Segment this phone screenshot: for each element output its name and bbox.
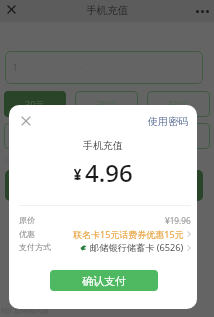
staticText: 优惠 — [19, 229, 35, 239]
button[interactable]: 200元 — [75, 123, 138, 149]
button[interactable]: 30元 — [4, 91, 66, 117]
button[interactable]: 确认支付 — [50, 270, 158, 291]
button[interactable]: 1 — [5, 51, 203, 84]
staticText: 8折 后继续问题 — [1, 306, 49, 316]
button[interactable]: Close — [4, 2, 19, 17]
staticText: 手机充值 — [86, 4, 128, 17]
staticText: ¥19.96 — [165, 215, 191, 226]
button[interactable]: 立即充值 — [5, 170, 203, 201]
button[interactable]: 优惠 — [9, 227, 197, 241]
staticText: 话费充值说明 — [5, 155, 53, 165]
staticText: 确认支付 — [82, 274, 126, 288]
button[interactable]: 100元 — [4, 123, 66, 149]
staticText: 邮储银行储蓄卡 (6526) — [90, 241, 184, 254]
button[interactable]: 使用密码 — [148, 115, 188, 128]
staticText: 30元 — [97, 98, 117, 110]
staticText: 1 — [13, 62, 18, 73]
button[interactable]: 30元 — [75, 91, 138, 117]
button[interactable]: 50元 — [147, 91, 210, 117]
staticText: 联名卡15元话费券优惠15元 — [73, 228, 184, 240]
staticText: 支付方式 — [19, 242, 51, 252]
staticText: 手机充值 — [83, 139, 123, 152]
staticText: 50元 — [169, 98, 189, 110]
staticText: 原价 — [19, 215, 35, 225]
button[interactable]: Close — [17, 112, 35, 130]
button[interactable]: More options — [194, 3, 210, 19]
staticText: 4.96 — [85, 156, 133, 189]
button[interactable]: 原价 — [9, 213, 197, 227]
staticText: 立即充值 — [84, 179, 124, 192]
staticText: 使用密码 — [148, 115, 188, 128]
staticText: 30元 — [25, 98, 45, 110]
staticText: 200元 — [94, 130, 119, 142]
button[interactable]: 支付方式 — [9, 240, 197, 254]
button[interactable]: 300元 — [147, 123, 210, 149]
